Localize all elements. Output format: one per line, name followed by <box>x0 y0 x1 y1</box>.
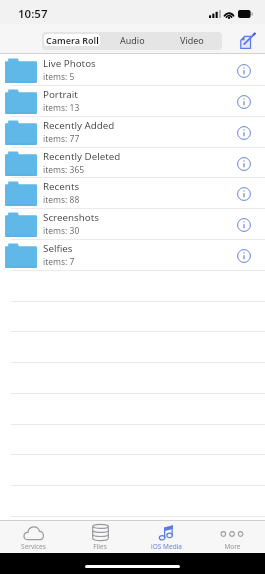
staticText: items: 365 <box>43 164 85 176</box>
button[interactable]: Recents <box>0 178 265 209</box>
staticText: 10:57 <box>18 6 48 22</box>
button[interactable]: Recently Deleted <box>0 148 265 179</box>
button[interactable]: More <box>199 521 265 551</box>
staticText: Camera Roll <box>46 34 99 46</box>
staticText: Video <box>180 34 204 46</box>
button[interactable]: Info <box>235 155 253 173</box>
button[interactable]: Compose <box>237 29 259 51</box>
button[interactable]: Camera Roll <box>44 34 100 46</box>
button[interactable]: Info <box>235 93 253 111</box>
staticText: iOS Media <box>151 542 182 551</box>
button[interactable]: Selfies <box>0 240 265 271</box>
button[interactable]: Live Photos <box>0 55 265 86</box>
staticText: Services <box>21 542 46 551</box>
staticText: More <box>224 542 241 551</box>
staticText: items: 88 <box>43 194 80 206</box>
button[interactable]: Video <box>164 34 220 46</box>
button[interactable]: iOS Media <box>133 521 199 551</box>
button[interactable]: Audio <box>104 34 160 46</box>
button[interactable]: Info <box>235 216 253 234</box>
button[interactable]: Recently Added <box>0 117 265 148</box>
button[interactable]: Files <box>67 521 133 551</box>
staticText: items: 30 <box>43 225 80 237</box>
staticText: Audio <box>120 34 145 46</box>
button[interactable]: Info <box>235 247 253 265</box>
staticText: Recently Added <box>43 119 115 132</box>
staticText: Live Photos <box>43 57 96 70</box>
button[interactable]: Info <box>235 124 253 142</box>
staticText: Recently Deleted <box>43 150 121 163</box>
staticText: Selfies <box>43 242 73 255</box>
button[interactable]: Services <box>0 521 67 551</box>
button[interactable]: Info <box>235 62 253 80</box>
button[interactable]: Screenshots <box>0 209 265 240</box>
button[interactable]: Portrait <box>0 86 265 117</box>
staticText: items: 77 <box>43 133 80 145</box>
staticText: items: 5 <box>43 71 75 83</box>
staticText: Recents <box>43 180 80 193</box>
staticText: items: 13 <box>43 102 80 114</box>
staticText: items: 7 <box>43 256 75 268</box>
staticText: Files <box>93 542 107 551</box>
staticText: Portrait <box>43 88 78 101</box>
staticText: Screenshots <box>43 211 99 224</box>
button[interactable]: Info <box>235 185 253 203</box>
